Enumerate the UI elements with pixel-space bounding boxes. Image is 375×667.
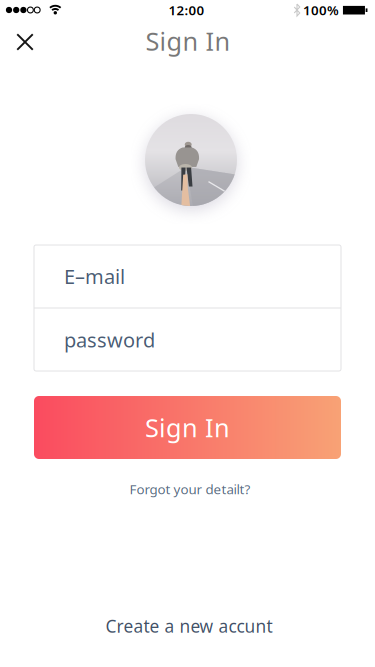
button[interactable]: Create a new accunt <box>100 609 277 642</box>
button[interactable]: E–mail <box>34 245 341 307</box>
button[interactable]: Sign In <box>34 396 341 459</box>
staticText: 100% <box>303 1 339 19</box>
staticText: Sign In <box>145 411 230 444</box>
button[interactable]: Forgot your detailt? <box>124 475 255 503</box>
button[interactable]: password <box>34 308 341 371</box>
staticText: Forgot your detailt? <box>129 480 250 498</box>
staticText: password <box>64 326 155 353</box>
staticText: E–mail <box>64 263 125 290</box>
staticText: 12:00 <box>168 1 204 19</box>
button[interactable]: Close <box>7 24 43 60</box>
staticText: Sign In <box>145 24 230 58</box>
staticText: Create a new accunt <box>105 614 272 637</box>
